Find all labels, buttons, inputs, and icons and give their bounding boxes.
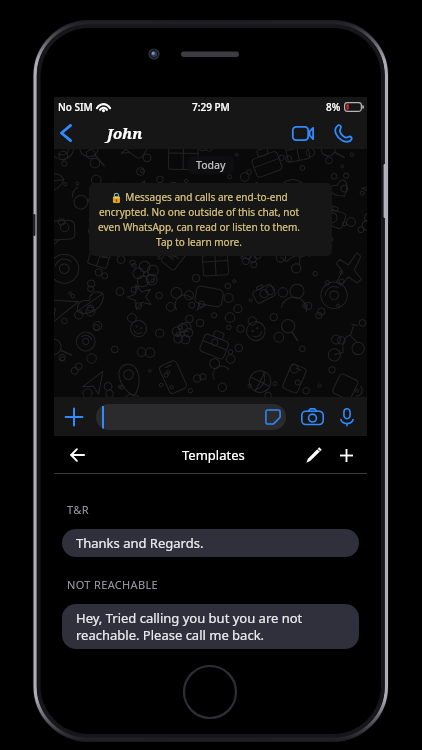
staticText: Thanks and Regards. bbox=[76, 534, 204, 552]
staticText: Hey, Tried calling you but you are not r… bbox=[76, 609, 303, 644]
button[interactable]: Add template bbox=[334, 439, 358, 471]
button[interactable]: Video call bbox=[288, 117, 318, 149]
button[interactable]: Attach bbox=[63, 402, 85, 432]
button[interactable]: Voice message bbox=[336, 402, 358, 432]
staticText: John bbox=[107, 123, 143, 143]
button[interactable]: 🔒 Messages and calls are end-to-end encr… bbox=[89, 183, 332, 256]
staticText: No SIM bbox=[58, 100, 93, 114]
staticText: Templates bbox=[182, 446, 245, 464]
button[interactable]: Hey, Tried calling you but you are not r… bbox=[62, 604, 359, 649]
staticText: 🔒 Messages and calls are end-to-end encr… bbox=[98, 190, 300, 249]
staticText: 7:29 PM bbox=[192, 100, 230, 114]
staticText: NOT REACHABLE bbox=[67, 577, 159, 592]
button[interactable]: Voice call bbox=[326, 117, 358, 149]
button[interactable]: Edit bbox=[302, 439, 326, 471]
staticText: T&R bbox=[67, 502, 89, 517]
button[interactable]: Camera bbox=[300, 402, 325, 432]
button[interactable]: Thanks and Regards. bbox=[62, 529, 359, 557]
button[interactable]: Back bbox=[54, 117, 78, 149]
staticText: 8% bbox=[326, 100, 341, 114]
staticText: Today bbox=[196, 158, 226, 172]
button[interactable] bbox=[96, 404, 286, 430]
button[interactable]: Back bbox=[64, 439, 90, 471]
